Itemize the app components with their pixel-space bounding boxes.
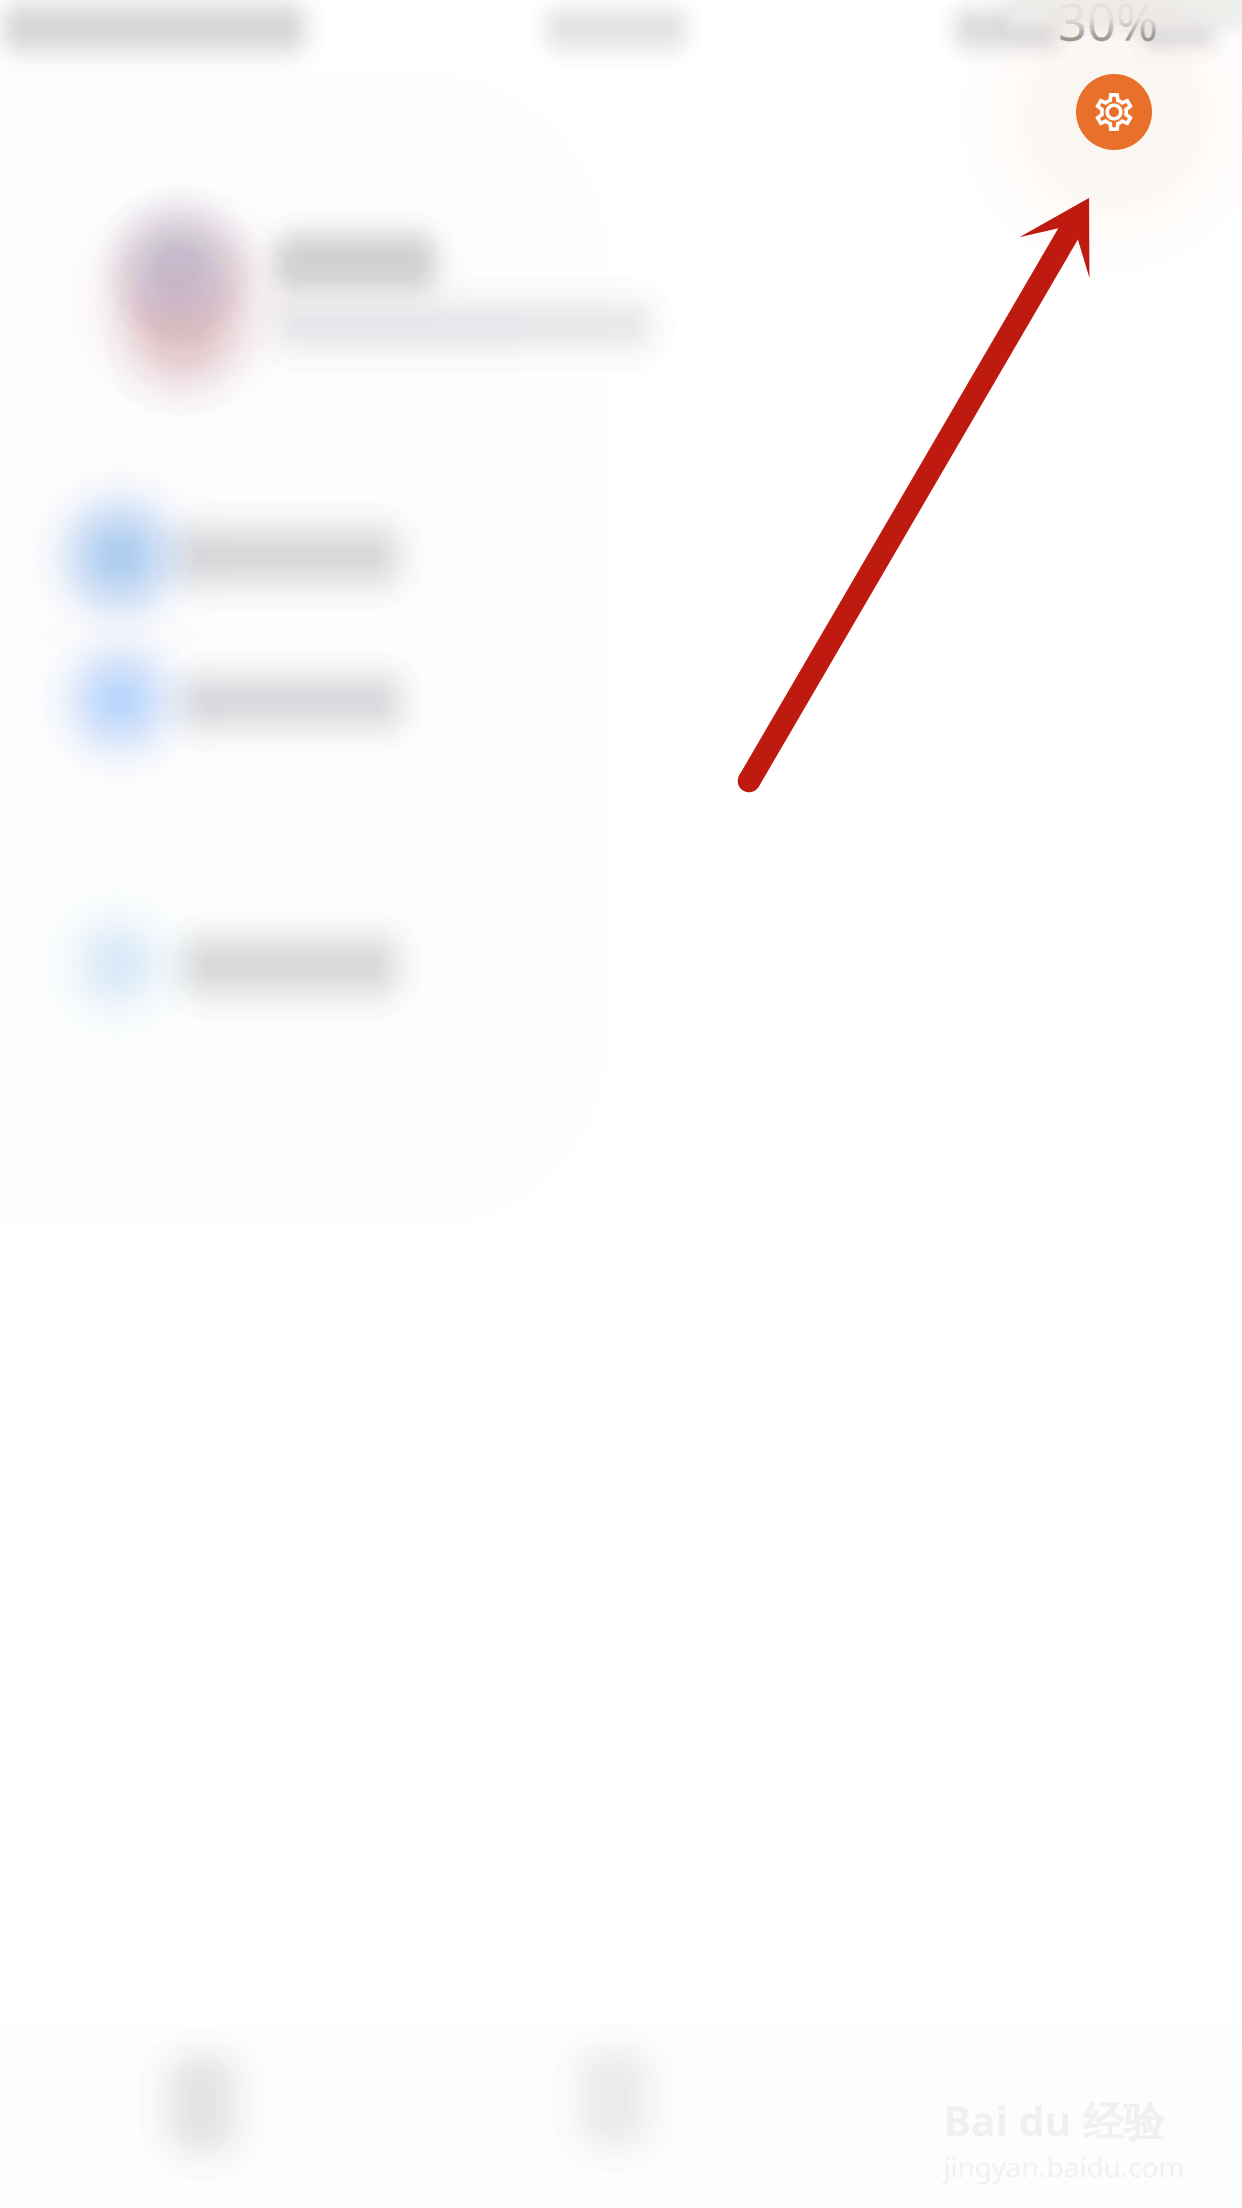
staticText: jingyan.baidu.com [943,2148,1184,2185]
staticText: 30% [1058,0,1158,55]
staticText: Bai du 经验 [943,2093,1164,2148]
button[interactable]: Settings [1064,62,1164,162]
